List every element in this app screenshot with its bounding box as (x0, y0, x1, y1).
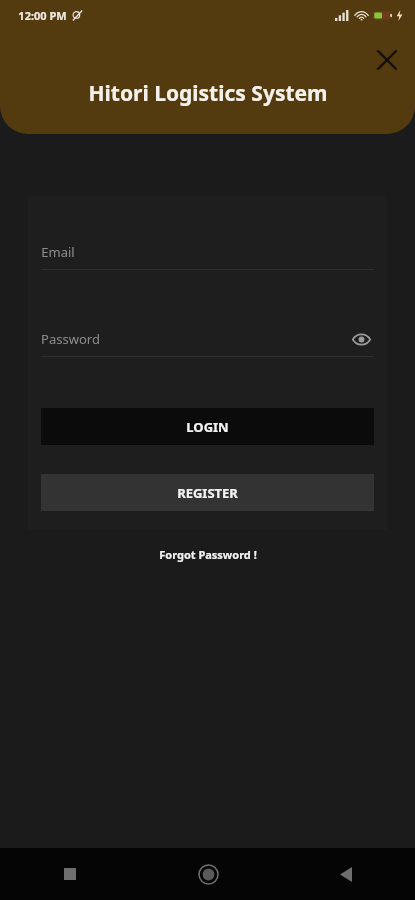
button[interactable]: Recent apps (0, 848, 139, 900)
button[interactable]: Home (139, 848, 277, 900)
button[interactable]: REGISTER (41, 474, 374, 511)
staticText: 12:00 PM (18, 8, 67, 23)
button[interactable]: Password (41, 327, 374, 351)
button[interactable]: Email (41, 240, 374, 264)
staticText: Password (41, 330, 100, 348)
button[interactable]: Forgot Password ! (147, 543, 269, 566)
button[interactable]: Close (365, 38, 409, 82)
staticText: Forgot Password ! (159, 547, 257, 562)
button[interactable]: Back (277, 848, 415, 900)
staticText: REGISTER (177, 484, 238, 502)
staticText: Email (41, 243, 75, 261)
button[interactable]: Show password (348, 327, 374, 351)
staticText: LOGIN (186, 418, 229, 436)
staticText: Hitori Logistics System (88, 79, 328, 108)
button[interactable]: LOGIN (41, 408, 374, 445)
